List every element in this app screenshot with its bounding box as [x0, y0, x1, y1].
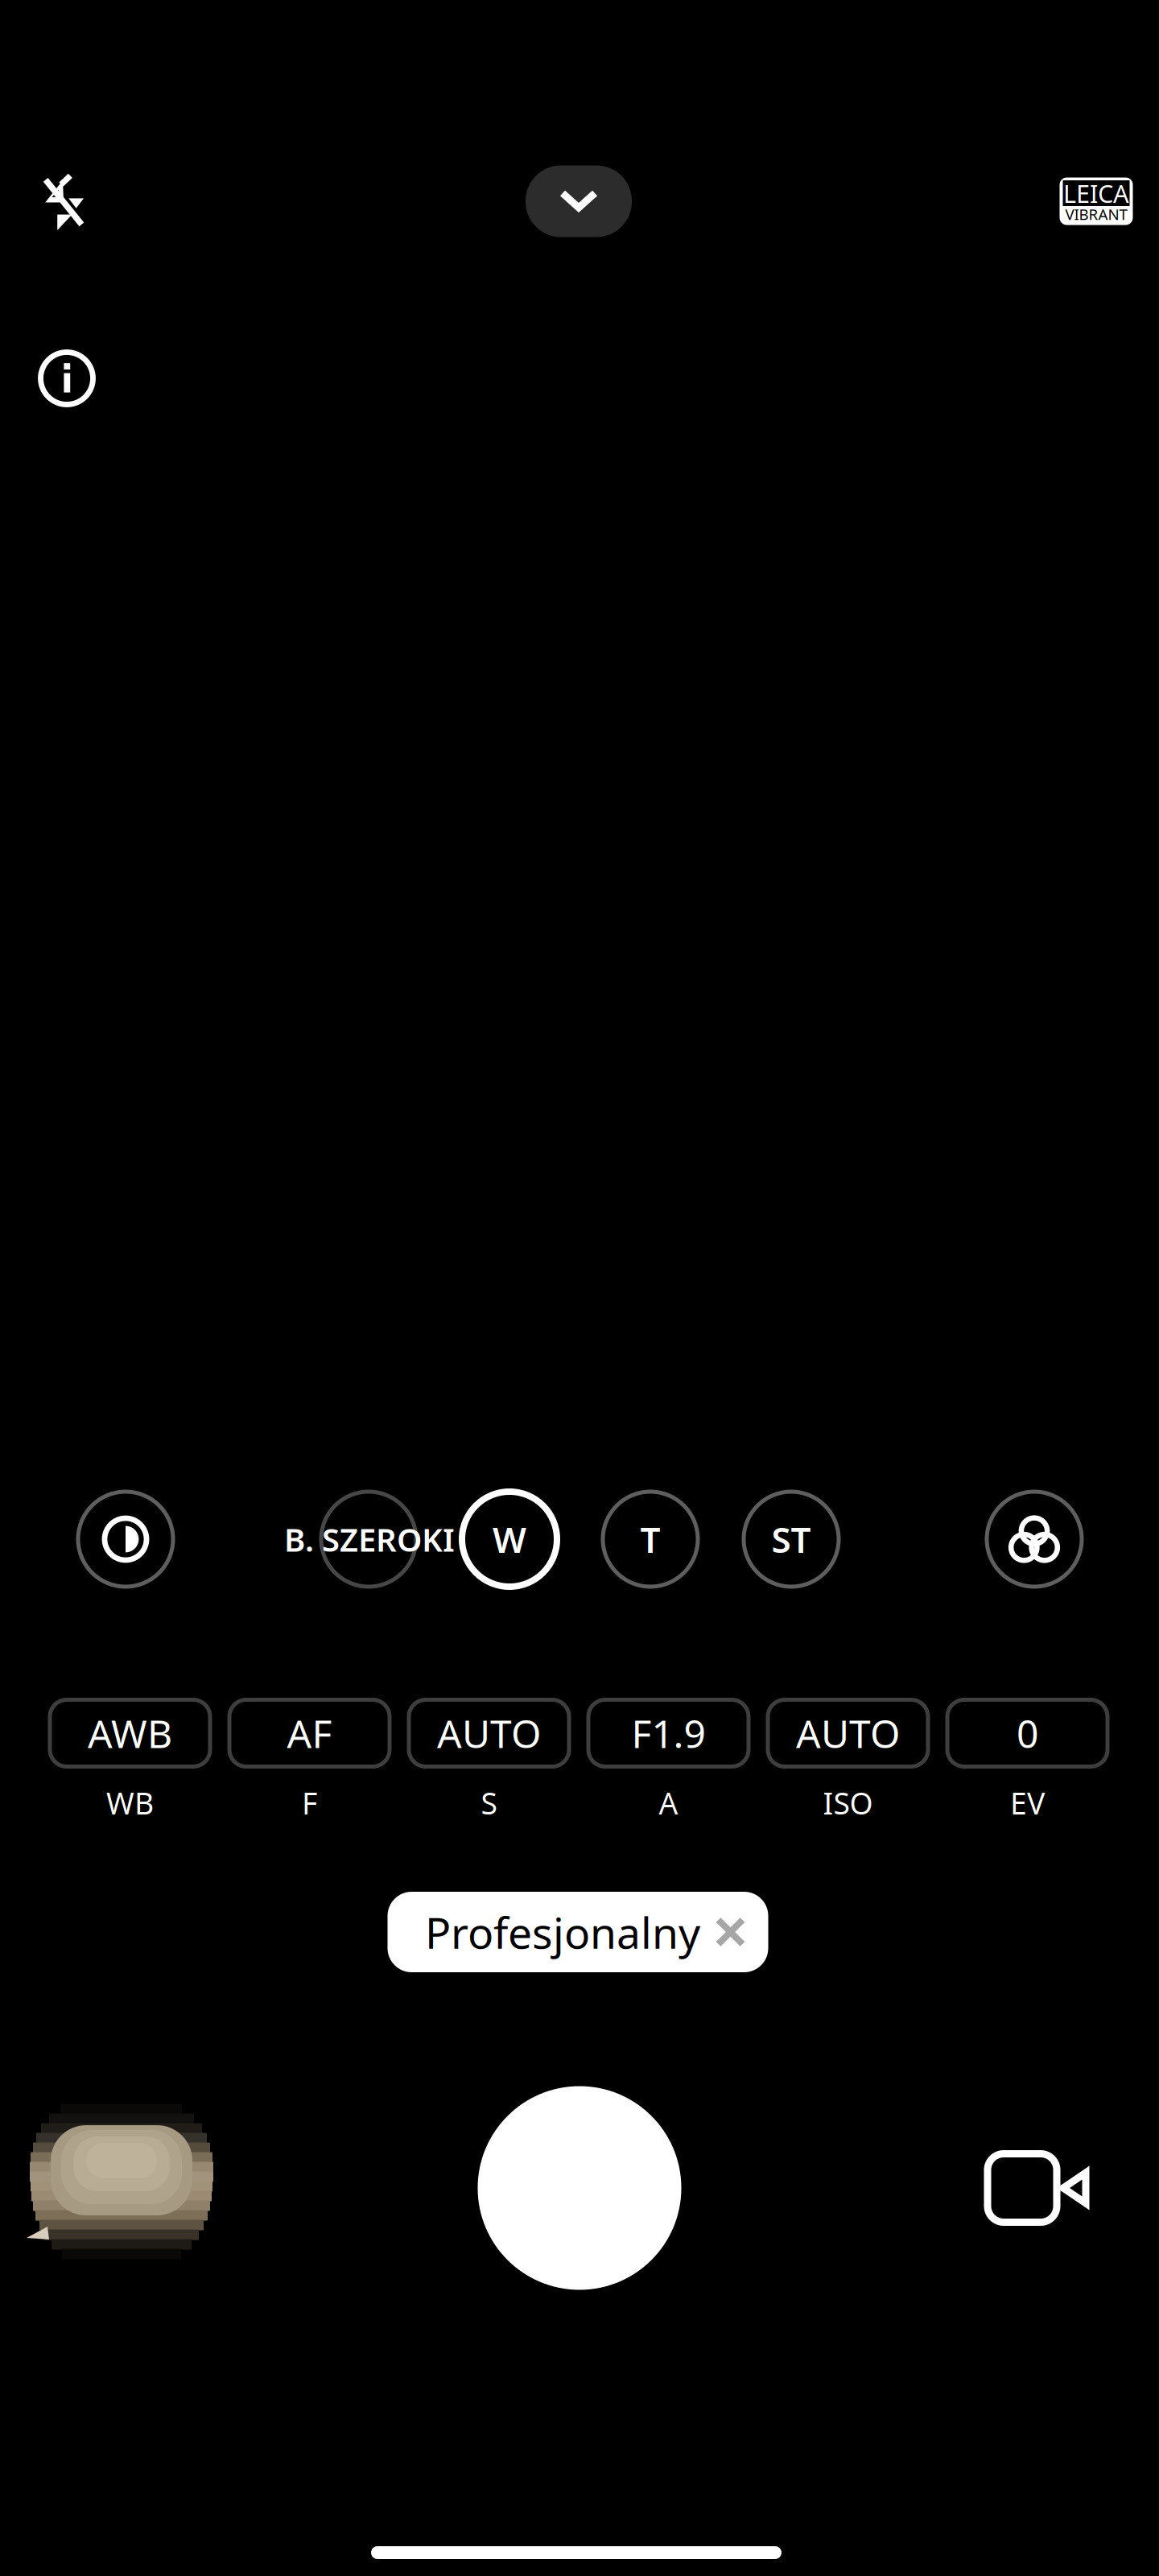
button[interactable]: Shutter [478, 2086, 681, 2290]
button[interactable]: Profesjonalny [388, 1892, 768, 1972]
staticText: AF [287, 1707, 332, 1759]
button[interactable]: Telephoto [600, 1489, 700, 1589]
staticText: EV [1010, 1783, 1045, 1823]
button[interactable]: Filters [984, 1489, 1084, 1589]
staticText: LEICA [1063, 177, 1129, 210]
staticText: WB [106, 1783, 154, 1823]
button[interactable]: Information [19, 331, 114, 426]
staticText: ST [771, 1516, 811, 1563]
button[interactable]: AUTO [768, 1700, 928, 1839]
staticText: Profesjonalny [425, 1904, 700, 1960]
button[interactable]: Switch to video [985, 2151, 1088, 2225]
staticText: VIBRANT [1065, 204, 1127, 224]
button[interactable]: AWB [50, 1700, 210, 1839]
staticText: 0 [1017, 1707, 1038, 1759]
staticText: ISO [823, 1783, 873, 1823]
button[interactable]: More settings [526, 165, 632, 237]
staticText: W [493, 1516, 526, 1563]
button[interactable]: Super telephoto [741, 1489, 841, 1589]
button[interactable]: Gallery [25, 2101, 218, 2262]
button[interactable]: 0 [947, 1700, 1107, 1839]
button[interactable]: F1.9 [588, 1700, 749, 1839]
staticText: AUTO [796, 1707, 900, 1759]
staticText: T [640, 1516, 660, 1563]
button[interactable]: Flash off [14, 153, 111, 250]
staticText: AUTO [437, 1707, 541, 1759]
staticText: AWB [88, 1707, 172, 1759]
button[interactable]: Tone [76, 1489, 175, 1589]
staticText: A [659, 1783, 678, 1823]
staticText: B. SZEROKI [284, 1518, 455, 1560]
staticText: F [302, 1783, 317, 1823]
button[interactable]: AUTO [409, 1700, 569, 1839]
staticText: F1.9 [631, 1707, 705, 1759]
staticText: S [481, 1783, 497, 1823]
button[interactable]: AF [229, 1700, 390, 1839]
button[interactable]: Leica Vibrant [1060, 178, 1133, 225]
button[interactable]: Ultra wide [319, 1489, 419, 1589]
button[interactable]: Wide, selected [460, 1489, 559, 1589]
